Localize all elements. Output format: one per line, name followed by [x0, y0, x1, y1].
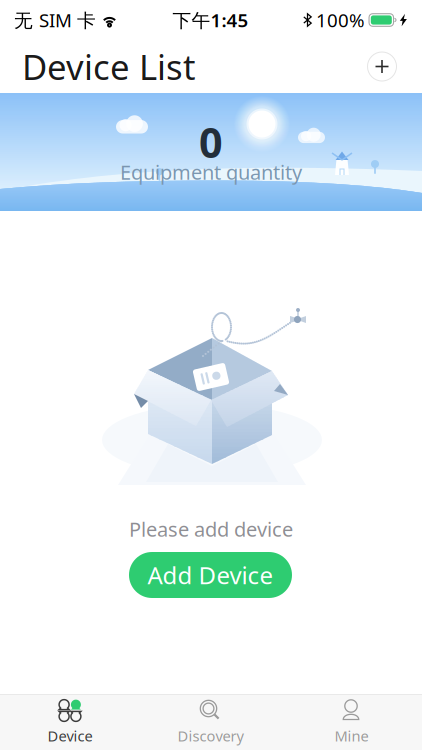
- staticText: 下午1:45: [172, 8, 248, 32]
- button[interactable]: Device: [0, 698, 140, 746]
- staticText: Discovery: [177, 726, 243, 745]
- button[interactable]: Mine: [281, 698, 422, 746]
- button[interactable]: Add Device: [129, 552, 292, 598]
- staticText: Device List: [22, 43, 196, 89]
- staticText: Add Device: [147, 559, 273, 591]
- button[interactable]: Add device: [360, 44, 404, 88]
- staticText: Mine: [334, 726, 368, 745]
- staticText: Device: [47, 726, 92, 745]
- staticText: 无 SIM 卡: [14, 8, 96, 32]
- staticText: Please add device: [129, 516, 293, 542]
- staticText: Equipment quantity: [120, 159, 302, 185]
- staticText: 0: [199, 115, 223, 169]
- button[interactable]: Discovery: [140, 698, 281, 746]
- staticText: 100%: [316, 8, 365, 32]
